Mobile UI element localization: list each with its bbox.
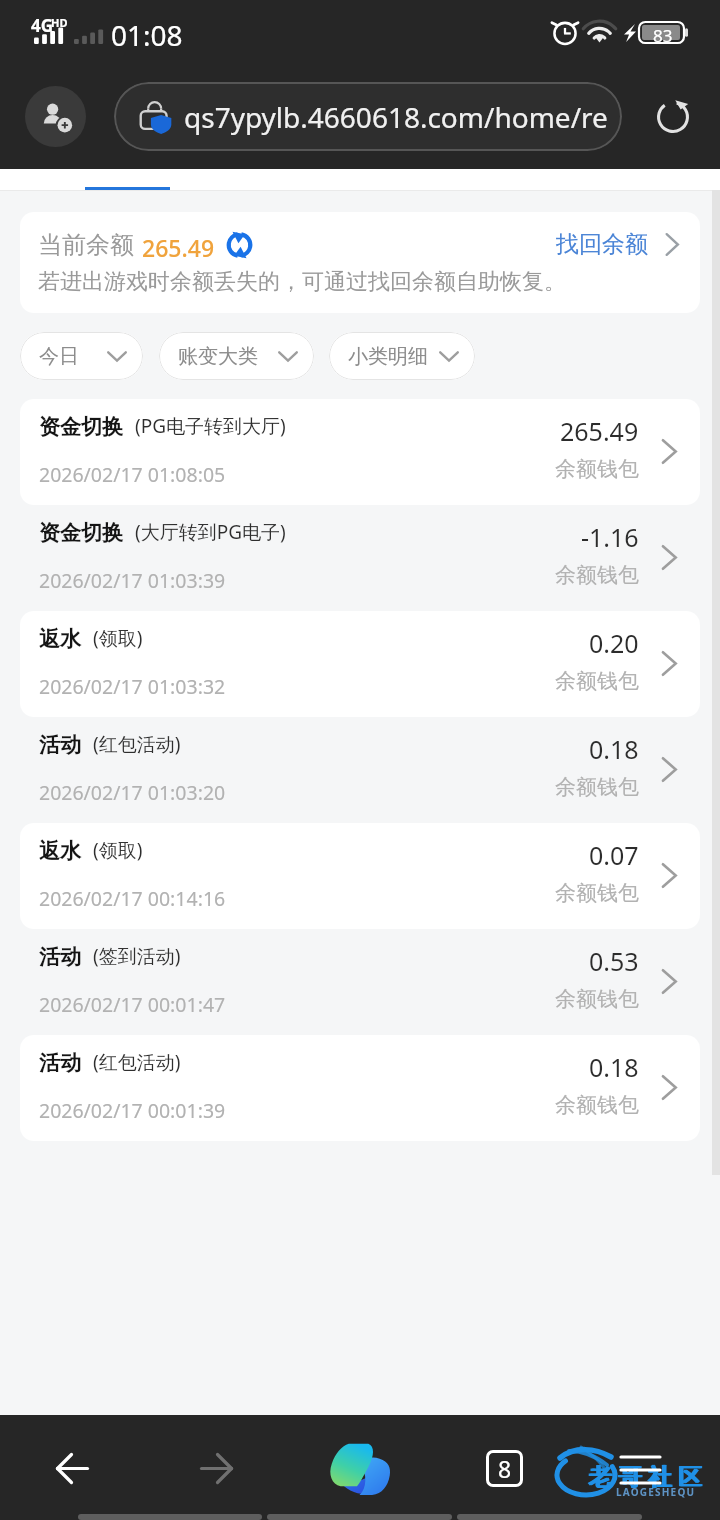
button[interactable]: 活动 <box>20 1035 700 1141</box>
button[interactable]: 资金切换 <box>20 399 700 505</box>
button[interactable]: 返水 <box>20 823 700 929</box>
button[interactable]: Copilot <box>324 1437 394 1499</box>
staticText: 2026/02/17 01:03:20 <box>39 779 226 806</box>
staticText: 265.49 <box>142 232 215 263</box>
staticText: LAOGESHEQU <box>616 1485 696 1499</box>
staticText: 01:08 <box>111 16 183 54</box>
staticText: 265.49 <box>560 414 639 448</box>
staticText: 活动 <box>39 944 81 970</box>
staticText: (大厅转到PG电子) <box>135 519 286 545</box>
staticText: 余额钱包 <box>555 1092 639 1118</box>
button[interactable]: 找回余额 <box>550 222 685 266</box>
staticText: 账变大类 <box>178 344 258 369</box>
button[interactable]: 资金切换 <box>20 505 700 611</box>
staticText: 2026/02/17 01:03:32 <box>39 673 226 700</box>
staticText: 0.18 <box>589 1050 639 1084</box>
staticText: HD <box>51 15 68 30</box>
staticText: 2026/02/17 01:03:39 <box>39 567 226 594</box>
staticText: 2026/02/17 00:01:39 <box>39 1097 226 1124</box>
button[interactable]: 活动 <box>20 717 700 823</box>
staticText: 0.07 <box>589 838 639 872</box>
staticText: 今日 <box>39 344 79 369</box>
button[interactable]: Forward <box>180 1447 252 1489</box>
staticText: (PG电子转到大厅) <box>135 413 286 439</box>
staticText: 老哥社区 <box>586 1463 706 1492</box>
staticText: 0.53 <box>589 944 639 978</box>
staticText: qs7ypylb.4660618.com/home/re <box>184 98 608 136</box>
staticText: 余额钱包 <box>555 456 639 482</box>
staticText: 资金切换 <box>39 414 123 440</box>
button[interactable]: Profile <box>25 86 86 147</box>
staticText: 返水 <box>39 626 81 652</box>
button[interactable]: Reload <box>648 92 698 142</box>
staticText: -1.16 <box>581 520 639 554</box>
staticText: 老哥社区 <box>584 1463 704 1492</box>
staticText: 2026/02/17 00:14:16 <box>39 885 226 912</box>
staticText: 小类明细 <box>348 344 428 369</box>
staticText: 4G <box>31 14 54 37</box>
button[interactable]: 当前余额 <box>20 212 700 313</box>
staticText: 余额钱包 <box>555 668 639 694</box>
staticText: 余额钱包 <box>555 562 639 588</box>
staticText: (红包活动) <box>93 1049 181 1075</box>
staticText: (签到活动) <box>93 943 181 969</box>
staticText: 找回余额 <box>556 230 648 259</box>
button[interactable]: qs7ypylb.4660618.com/home/re <box>114 82 622 151</box>
staticText: (领取) <box>93 837 143 863</box>
staticText: 资金切换 <box>39 520 123 546</box>
staticText: 2026/02/17 00:01:47 <box>39 991 226 1018</box>
button[interactable]: 账变大类 <box>159 332 314 380</box>
staticText: 返水 <box>39 838 81 864</box>
staticText: 余额钱包 <box>555 774 639 800</box>
staticText: 2026/02/17 01:08:05 <box>39 461 226 488</box>
staticText: 83 <box>653 24 673 45</box>
button[interactable]: Back <box>36 1447 108 1489</box>
staticText: 老哥社区 <box>585 1463 705 1492</box>
button[interactable]: 小类明细 <box>329 332 475 380</box>
button[interactable]: 活动 <box>20 929 700 1035</box>
staticText: 若进出游戏时余额丢失的，可通过找回余额自助恢复。 <box>38 268 566 296</box>
staticText: 8 <box>498 1453 512 1484</box>
staticText: 余额钱包 <box>555 880 639 906</box>
button[interactable]: Menu <box>604 1443 676 1497</box>
staticText: (红包活动) <box>93 731 181 757</box>
staticText: 余额钱包 <box>555 986 639 1012</box>
button[interactable]: 返水 <box>20 611 700 717</box>
staticText: 活动 <box>39 1050 81 1076</box>
staticText: 活动 <box>39 732 81 758</box>
button[interactable]: Tabs <box>470 1441 538 1495</box>
staticText: 0.18 <box>589 732 639 766</box>
button[interactable]: 今日 <box>20 332 143 380</box>
staticText: 当前余额 <box>38 230 134 260</box>
staticText: (领取) <box>93 625 143 651</box>
staticText: 0.20 <box>589 626 639 660</box>
